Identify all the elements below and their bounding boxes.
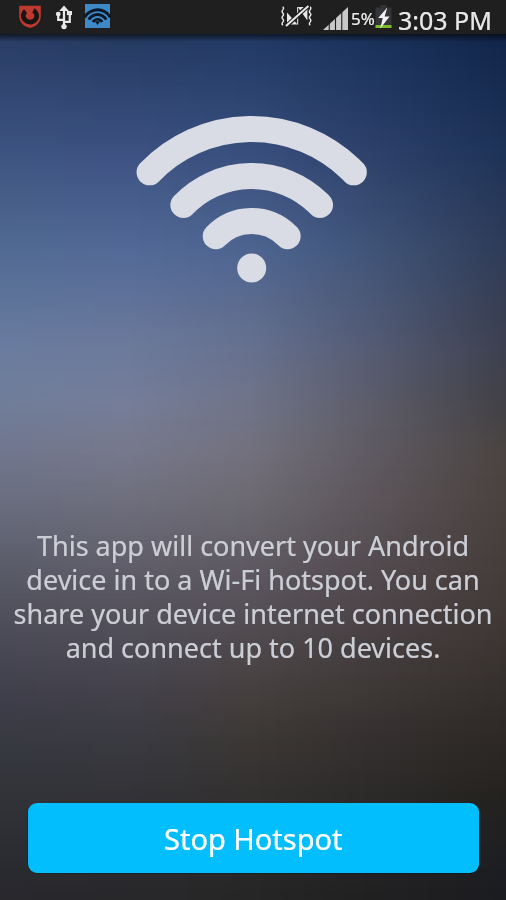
staticText: Stop Hotspot: [164, 819, 343, 858]
staticText: 5%: [351, 7, 375, 30]
staticText: This app will convert your Android devic…: [4, 527, 502, 666]
staticText: 3:03 PM: [398, 3, 492, 37]
button[interactable]: Stop Hotspot: [28, 803, 479, 873]
